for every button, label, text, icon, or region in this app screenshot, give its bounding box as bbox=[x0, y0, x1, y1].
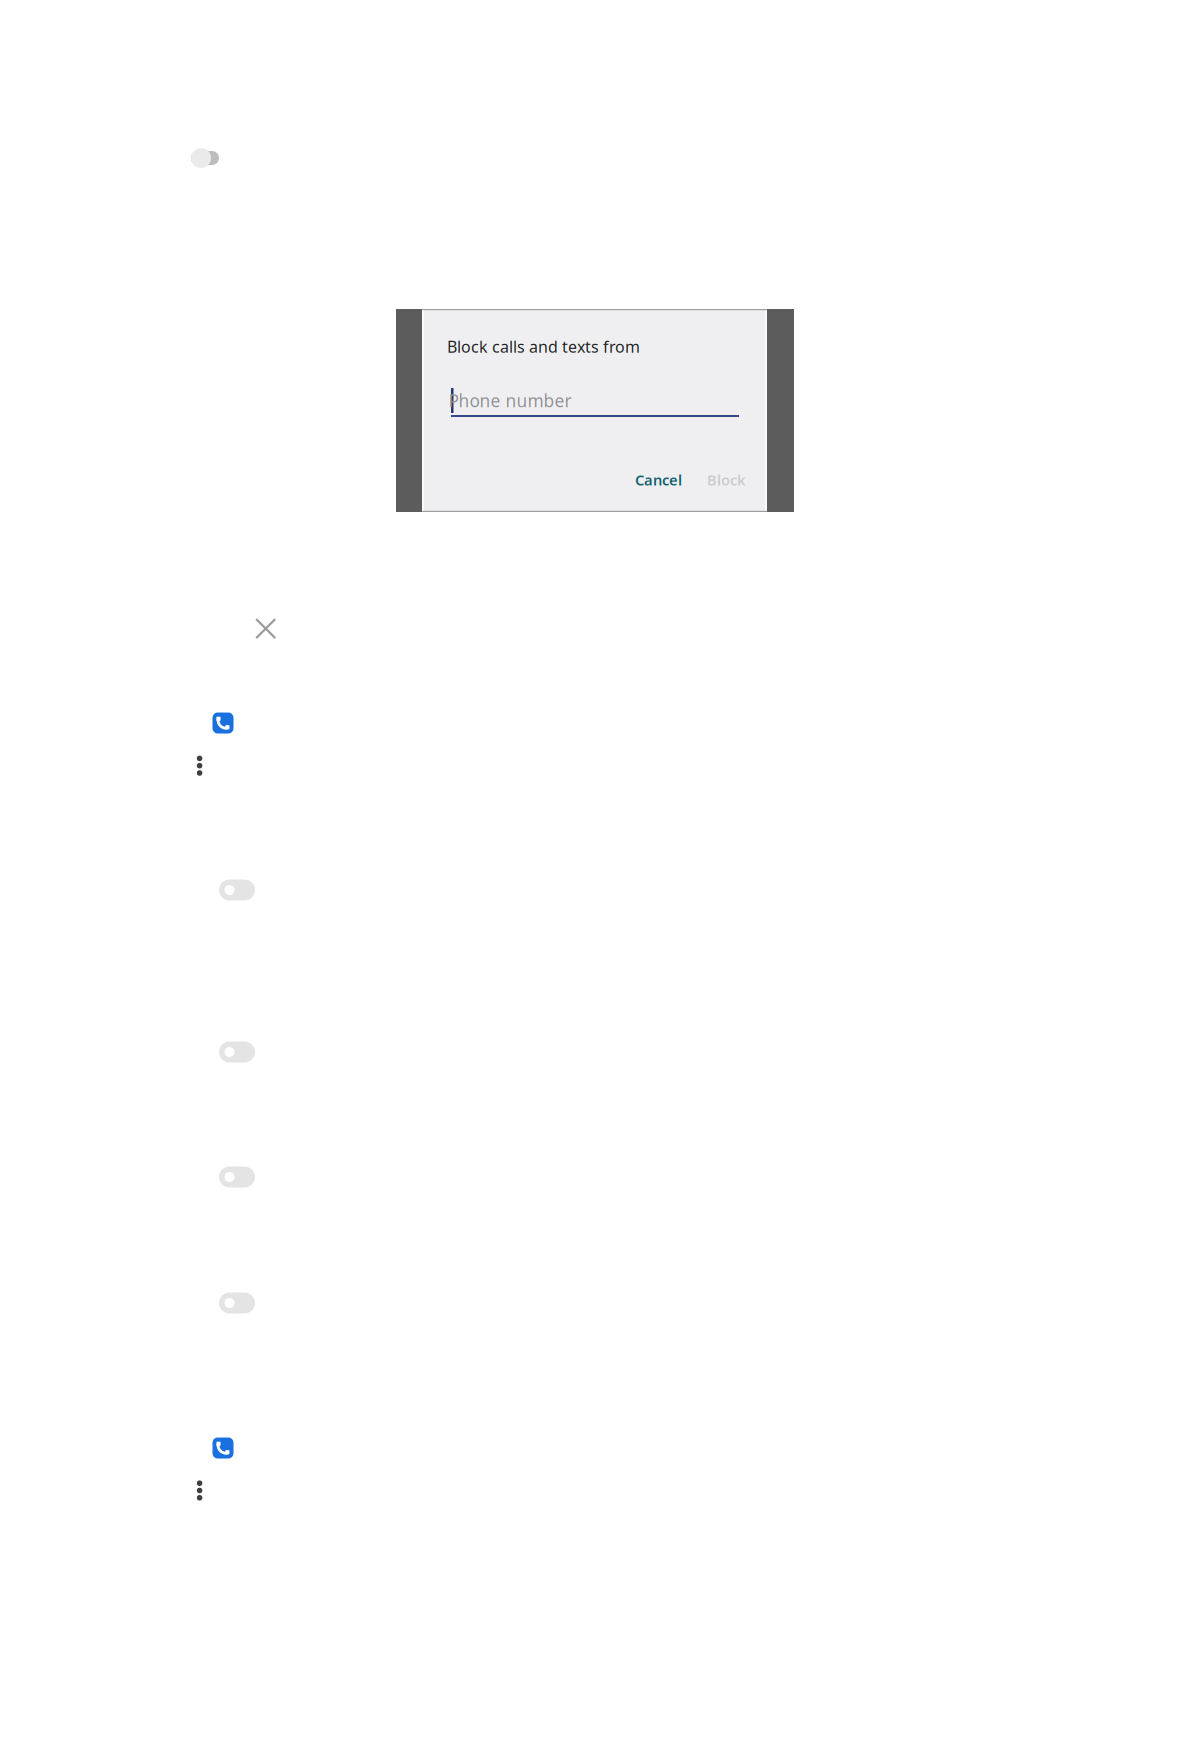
staticText: Block bbox=[707, 470, 746, 489]
staticText: Cancel bbox=[635, 470, 682, 489]
button[interactable]: Toggle setting bbox=[219, 1292, 255, 1313]
button[interactable]: More options bbox=[197, 1480, 202, 1501]
button[interactable]: Toggle setting bbox=[219, 879, 255, 900]
button[interactable]: Block bbox=[700, 463, 753, 496]
button[interactable]: Toggle setting bbox=[219, 1041, 255, 1062]
staticText: Block calls and texts from bbox=[447, 336, 640, 357]
button[interactable]: Cancel bbox=[628, 463, 689, 496]
button[interactable]: Phone bbox=[212, 1437, 233, 1458]
button[interactable]: Toggle setting bbox=[191, 148, 219, 168]
staticText: Phone number bbox=[448, 389, 571, 412]
button[interactable]: Phone bbox=[212, 712, 233, 733]
button[interactable]: More options bbox=[197, 756, 202, 776]
button[interactable]: Close bbox=[256, 619, 275, 638]
button[interactable]: Toggle setting bbox=[219, 1166, 255, 1187]
